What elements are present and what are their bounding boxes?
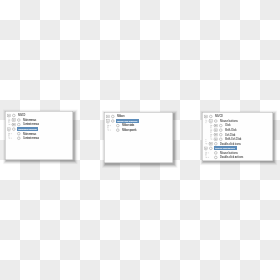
- button[interactable]: Mouse behaviours: [214, 146, 237, 150]
- button[interactable]: Mouse buttons: [219, 119, 239, 123]
- button[interactable]: Mouse buttons: [219, 151, 239, 155]
- staticText: Double-click actions: [220, 155, 244, 159]
- button[interactable]: Ribbon: [116, 114, 126, 118]
- staticText: Context menus: [23, 122, 39, 126]
- staticText: Shift-Click: [225, 128, 237, 132]
- button[interactable]: Click: [224, 123, 232, 127]
- staticText: Mouse behaviours: [215, 147, 236, 150]
- staticText: Main menus: [23, 132, 36, 136]
- staticText: Ctrl-Click: [225, 133, 236, 137]
- button[interactable]: MS/CD: [17, 113, 27, 117]
- staticText: Mouse buttons: [220, 119, 238, 123]
- staticText: Shift-Ctrl-Click: [225, 137, 242, 141]
- staticText: MS/CD: [18, 113, 26, 117]
- button[interactable]: Context menus: [22, 136, 40, 140]
- button[interactable]: Shift-Ctrl-Click: [224, 137, 243, 141]
- button[interactable]: Shift-Click: [224, 128, 238, 132]
- staticText: Double-click icons: [220, 142, 241, 146]
- staticText: Main menus: [23, 118, 36, 122]
- button[interactable]: Double-click icons: [219, 142, 242, 146]
- staticText: Ribbon user interface: [117, 120, 138, 123]
- button[interactable]: Context menus: [22, 122, 40, 126]
- button[interactable]: Ribbon panels: [121, 128, 138, 132]
- button[interactable]: Application features: [17, 127, 38, 131]
- button[interactable]: Ctrl-Click: [224, 133, 237, 137]
- staticText: Application features: [18, 128, 37, 131]
- button[interactable]: MS/CD: [214, 114, 224, 118]
- staticText: Mouse buttons: [220, 151, 238, 155]
- staticText: Click: [225, 123, 231, 127]
- staticText: Ribbon: [117, 114, 125, 118]
- button[interactable]: Main menus: [22, 118, 37, 122]
- button[interactable]: Ribbon tabs: [121, 123, 136, 127]
- button[interactable]: Ribbon user interface: [116, 119, 139, 123]
- staticText: Context menus: [23, 136, 39, 140]
- staticText: Ribbon panels: [122, 128, 137, 132]
- staticText: Ribbon tabs: [122, 123, 135, 127]
- button[interactable]: Main menus: [22, 132, 37, 136]
- button[interactable]: Double-click actions: [219, 155, 245, 159]
- staticText: MS/CD: [215, 114, 223, 118]
